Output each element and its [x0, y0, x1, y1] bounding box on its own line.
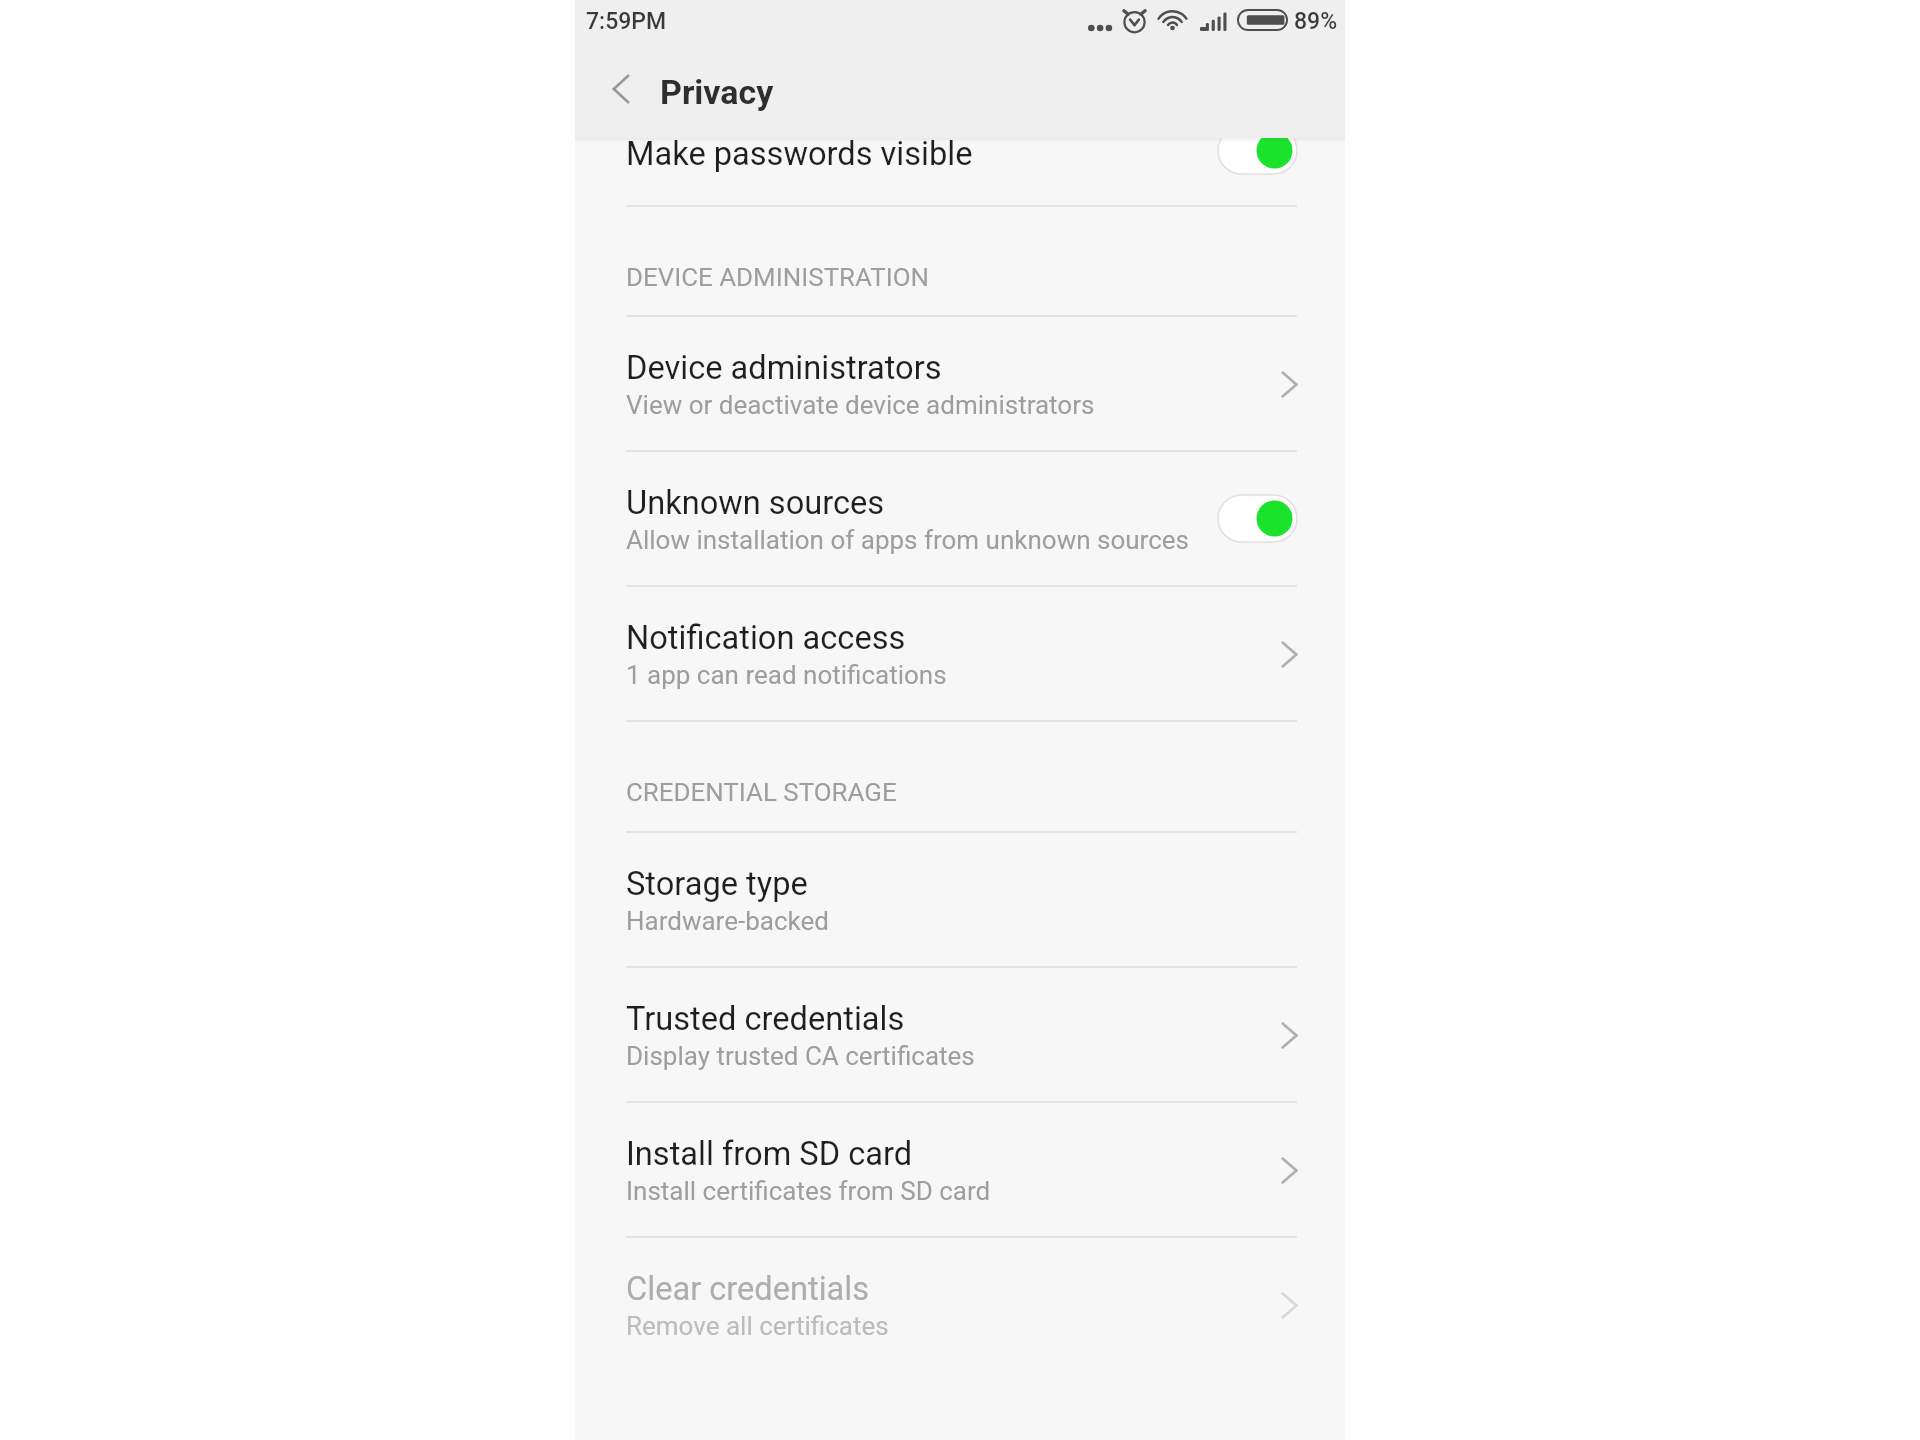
staticText: 7:59PM	[586, 8, 667, 35]
staticText: Display trusted CA certificates	[626, 1041, 975, 1071]
staticText: Clear credentials	[626, 1270, 870, 1308]
button[interactable]: Unknown sources	[575, 452, 1345, 585]
button[interactable]: Trusted credentials	[575, 968, 1345, 1101]
staticText: DEVICE ADMINISTRATION	[626, 262, 930, 292]
button[interactable]: Storage type	[575, 833, 1345, 966]
staticText: 1 app can read notifications	[626, 660, 947, 690]
staticText: Unknown sources	[626, 484, 885, 522]
button[interactable]: Make passwords visible	[1218, 127, 1297, 174]
button[interactable]: Back	[597, 65, 645, 113]
staticText: Device administrators	[626, 349, 942, 387]
staticText: Privacy	[660, 72, 774, 112]
staticText: Make passwords visible	[626, 135, 973, 173]
staticText: CREDENTIAL STORAGE	[626, 777, 897, 807]
button[interactable]: Make passwords visible	[575, 138, 1345, 205]
staticText: View or deactivate device administrators	[626, 390, 1095, 420]
staticText: Storage type	[626, 865, 808, 903]
staticText: Allow installation of apps from unknown …	[626, 525, 1189, 555]
button[interactable]: Clear credentials	[575, 1238, 1345, 1372]
staticText: Trusted credentials	[626, 1000, 905, 1038]
staticText: Install from SD card	[626, 1135, 913, 1173]
staticText: Install certificates from SD card	[626, 1176, 991, 1206]
staticText: Remove all certificates	[626, 1311, 889, 1341]
button[interactable]: Notification access	[575, 587, 1345, 720]
button[interactable]: Unknown sources	[1218, 495, 1297, 542]
button[interactable]: Device administrators	[575, 317, 1345, 450]
staticText: 89%	[1294, 8, 1338, 35]
staticText: Notification access	[626, 619, 906, 657]
staticText: Hardware-backed	[626, 906, 829, 936]
button[interactable]: Install from SD card	[575, 1103, 1345, 1236]
